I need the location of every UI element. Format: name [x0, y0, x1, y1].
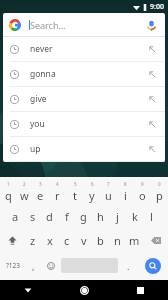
button[interactable]: 8 [117, 180, 134, 204]
staticText: 6 [91, 181, 94, 187]
button[interactable]: k [126, 204, 143, 228]
staticText: 5 [74, 181, 77, 187]
staticText: 2 [23, 181, 26, 187]
button[interactable]: d [41, 204, 58, 228]
button[interactable]: f [58, 204, 75, 228]
staticText: q [5, 188, 12, 203]
staticText: b [97, 233, 104, 248]
button[interactable]: up [3, 137, 165, 161]
button[interactable]: c [58, 228, 75, 253]
staticText: n [114, 233, 121, 248]
button[interactable]: 5 [66, 180, 83, 204]
staticText: o [139, 188, 146, 203]
staticText: x [47, 233, 53, 248]
button[interactable]: z [24, 228, 41, 253]
button[interactable]: 4 [49, 180, 66, 204]
button[interactable]: 0 [151, 180, 168, 204]
button[interactable]: gonna [3, 62, 165, 86]
staticText: m [129, 233, 140, 248]
button[interactable]: Insert up [146, 143, 158, 155]
button[interactable]: 1 [0, 180, 16, 204]
button[interactable]: s [24, 204, 41, 228]
staticText: . [127, 260, 130, 272]
staticText: y [89, 188, 95, 203]
button[interactable]: Hide keyboard [0, 280, 56, 300]
button[interactable]: give [3, 87, 165, 111]
button[interactable]: never [3, 37, 165, 61]
staticText: l [150, 209, 153, 224]
staticText: 1 [7, 181, 10, 187]
button[interactable]: Emoji [42, 253, 59, 278]
button[interactable]: h [92, 204, 109, 228]
staticText: , [32, 260, 35, 272]
staticText: give [30, 93, 146, 105]
staticText: t [73, 188, 77, 203]
button[interactable]: n [109, 228, 126, 253]
button[interactable]: j [109, 204, 126, 228]
staticText: e [37, 188, 44, 203]
button[interactable]: x [41, 228, 58, 253]
button[interactable]: b [92, 228, 109, 253]
staticText: j [116, 209, 119, 224]
button[interactable]: Home [56, 280, 112, 300]
button[interactable]: 2 [16, 180, 32, 204]
button[interactable]: Backspace [143, 228, 168, 253]
button[interactable]: . [120, 253, 137, 278]
staticText: Search… [30, 19, 66, 31]
staticText: c [64, 233, 70, 248]
button[interactable]: Recents [112, 280, 168, 300]
staticText: ?123 [6, 261, 20, 270]
staticText: v [81, 233, 87, 248]
staticText: 3 [39, 181, 42, 187]
staticText: 9:00 [150, 2, 164, 12]
staticText: u [105, 188, 112, 203]
button[interactable]: Voice search [143, 17, 159, 33]
button[interactable]: , [25, 253, 42, 278]
staticText: 9 [141, 181, 144, 187]
staticText: g [80, 209, 87, 224]
button[interactable]: Insert gonna [146, 68, 158, 80]
button[interactable]: l [143, 204, 160, 228]
staticText: r [55, 188, 60, 203]
staticText: never [30, 43, 146, 55]
button[interactable]: 6 [83, 180, 100, 204]
button[interactable]: 9 [134, 180, 151, 204]
button[interactable]: Insert give [146, 93, 158, 105]
staticText: k [132, 209, 138, 224]
staticText: s [30, 209, 36, 224]
staticText: w [20, 188, 29, 203]
staticText: gonna [30, 68, 146, 80]
staticText: 7 [107, 181, 110, 187]
staticText: i [124, 188, 127, 203]
button[interactable]: a [7, 204, 24, 228]
button[interactable]: you [3, 112, 165, 136]
button[interactable]: Shift [0, 228, 24, 253]
staticText: z [30, 233, 36, 248]
staticText: d [46, 209, 53, 224]
staticText: 8 [124, 181, 127, 187]
button[interactable]: m [126, 228, 143, 253]
button[interactable]: 3 [32, 180, 49, 204]
button[interactable]: v [75, 228, 92, 253]
button[interactable]: Search… [3, 13, 165, 36]
staticText: f [65, 209, 69, 224]
button[interactable]: g [75, 204, 92, 228]
staticText: 4 [56, 181, 59, 187]
button[interactable]: 7 [100, 180, 117, 204]
button[interactable]: ?123 [0, 253, 25, 278]
button[interactable]: Insert you [146, 118, 158, 130]
staticText: p [156, 188, 163, 203]
staticText: a [12, 209, 19, 224]
staticText: you [30, 118, 146, 130]
staticText: up [30, 143, 146, 155]
button[interactable]: Search [145, 258, 161, 274]
staticText: h [97, 209, 104, 224]
staticText: 0 [158, 181, 161, 187]
button[interactable]: Insert never [146, 43, 158, 55]
